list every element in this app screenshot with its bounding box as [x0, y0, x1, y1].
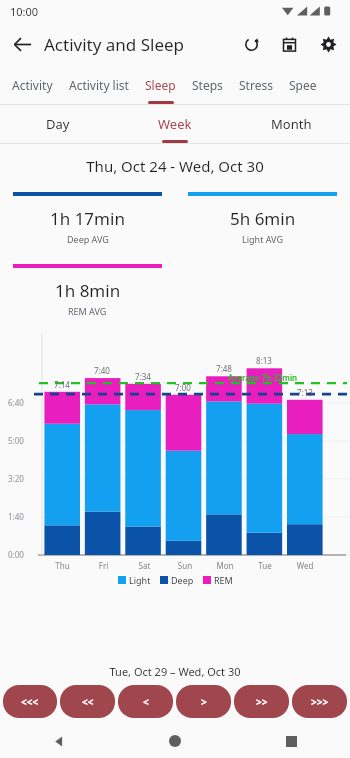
- button[interactable]: Calendar: [270, 25, 308, 63]
- staticText: Sat: [124, 560, 165, 571]
- staticText: Week: [158, 115, 192, 133]
- staticText: 7:48: [204, 363, 244, 374]
- staticText: 7:00: [163, 382, 203, 393]
- staticText: >>>: [311, 695, 329, 709]
- button[interactable]: Refresh: [232, 25, 270, 63]
- button[interactable]: <: [118, 685, 173, 718]
- staticText: 1h 8min: [55, 279, 121, 302]
- staticText: Sleep: [145, 77, 176, 93]
- button[interactable]: Day: [0, 105, 116, 143]
- staticText: Mon: [205, 560, 245, 571]
- button[interactable]: Week: [116, 105, 233, 143]
- staticText: Average 7h 32min: [228, 372, 298, 383]
- staticText: 5h 6min: [230, 207, 296, 230]
- staticText: 7:34: [123, 371, 163, 382]
- staticText: 1h 17min: [50, 207, 125, 230]
- staticText: Thu, Oct 24 - Wed, Oct 30: [0, 156, 350, 176]
- staticText: Light: [129, 574, 151, 586]
- staticText: Sun: [165, 560, 205, 571]
- staticText: Stress: [239, 77, 273, 93]
- staticText: >: [201, 695, 207, 709]
- staticText: Activity: [12, 77, 53, 93]
- staticText: 8:13: [244, 355, 284, 366]
- button[interactable]: Sleep: [137, 66, 184, 104]
- button[interactable]: Back: [0, 22, 44, 66]
- staticText: Fri: [83, 560, 124, 571]
- staticText: Spee: [289, 77, 317, 93]
- staticText: <: [143, 695, 149, 709]
- button[interactable]: Steps: [184, 66, 231, 104]
- staticText: Deep AVG: [67, 233, 109, 245]
- button[interactable]: Activity list: [61, 66, 137, 104]
- button[interactable]: Month: [233, 105, 350, 143]
- button[interactable]: Stress: [231, 66, 281, 104]
- staticText: >>: [256, 695, 268, 709]
- button[interactable]: <<<: [3, 685, 57, 718]
- staticText: Day: [46, 115, 70, 133]
- staticText: 7:14: [42, 379, 82, 390]
- staticText: Thu: [42, 560, 83, 571]
- staticText: <<<: [21, 695, 39, 709]
- staticText: 1:40: [8, 511, 24, 522]
- staticText: <<: [82, 695, 94, 709]
- staticText: Month: [271, 115, 312, 133]
- staticText: 0:00: [8, 549, 24, 560]
- staticText: 7:40: [82, 365, 122, 376]
- button[interactable]: >: [176, 685, 231, 718]
- staticText: REM AVG: [68, 305, 107, 317]
- staticText: Tue: [245, 560, 285, 571]
- button[interactable]: >>: [234, 685, 289, 718]
- staticText: Steps: [192, 77, 223, 93]
- staticText: REM: [214, 574, 233, 586]
- staticText: Activity and Sleep: [44, 33, 185, 56]
- button[interactable]: >>>: [292, 685, 347, 718]
- button[interactable]: Spee: [281, 66, 325, 104]
- button[interactable]: Settings: [308, 24, 348, 64]
- staticText: 10:00: [10, 4, 39, 19]
- staticText: 3:20: [8, 473, 24, 484]
- staticText: Light AVG: [242, 233, 283, 245]
- staticText: Wed: [285, 560, 325, 571]
- staticText: Tue, Oct 29 – Wed, Oct 30: [0, 664, 350, 679]
- staticText: Deep: [171, 574, 194, 586]
- staticText: Activity list: [69, 77, 129, 93]
- staticText: 7:13: [285, 387, 325, 398]
- staticText: 6:40: [8, 397, 24, 408]
- button[interactable]: Activity: [4, 66, 61, 104]
- button[interactable]: <<: [60, 685, 115, 718]
- staticText: 5:00: [8, 435, 24, 446]
